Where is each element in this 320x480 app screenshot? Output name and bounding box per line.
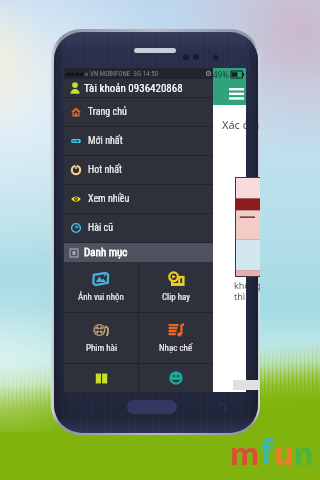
staticText: Danh mục bbox=[84, 246, 128, 259]
button[interactable]: Mới nhất bbox=[64, 127, 213, 155]
staticText: không thì... bbox=[234, 279, 260, 302]
button[interactable]: Vui cười bbox=[139, 364, 213, 392]
staticText: Phim hài bbox=[86, 343, 117, 354]
button[interactable]: Nhạc chế bbox=[139, 313, 213, 363]
staticText: Hot nhất bbox=[88, 164, 122, 176]
button[interactable]: Truyện bbox=[64, 364, 138, 392]
staticText: Clip hay bbox=[162, 292, 191, 303]
staticText: m bbox=[230, 433, 260, 474]
staticText: f bbox=[260, 428, 274, 474]
button[interactable]: Hot nhất bbox=[64, 156, 213, 184]
button[interactable]: Clip hay bbox=[139, 262, 213, 312]
staticText: Xác định ng bbox=[222, 117, 260, 132]
staticText: 49% bbox=[213, 69, 229, 80]
button[interactable]: Menu bbox=[228, 86, 245, 101]
staticText: VN MOBIFONE 3G 14:50 bbox=[90, 70, 159, 78]
button[interactable]: Trang chủ bbox=[64, 98, 213, 126]
staticText: Ảnh vui nhộn bbox=[78, 292, 124, 303]
staticText: n bbox=[294, 433, 314, 474]
staticText: Trang chủ bbox=[88, 106, 127, 118]
staticText: Xem nhiều bbox=[88, 193, 130, 205]
button[interactable]: Xem nhiều bbox=[64, 185, 213, 213]
button[interactable]: Tài khoản 0936420868 bbox=[64, 79, 213, 97]
staticText: Mới nhất bbox=[88, 135, 123, 147]
staticText: u bbox=[274, 433, 294, 474]
staticText: Tài khoản 0936420868 bbox=[84, 82, 183, 95]
button[interactable]: Ảnh vui nhộn bbox=[64, 262, 138, 312]
button[interactable]: Hài cũ bbox=[64, 214, 213, 242]
button[interactable]: Phim hài bbox=[64, 313, 138, 363]
staticText: Hài cũ bbox=[88, 222, 114, 234]
staticText: Nhạc chế bbox=[159, 343, 193, 354]
